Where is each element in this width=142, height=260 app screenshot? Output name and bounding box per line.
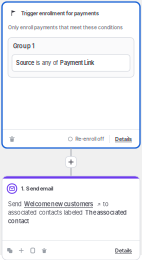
staticText: Details <box>115 247 132 254</box>
staticText: Send Welcome new customers ↗ to associat… <box>8 201 127 225</box>
button[interactable]: Add step <box>64 155 78 169</box>
staticText: Source is any of Payment Link <box>16 60 94 66</box>
staticText: Only enroll payments that meet these con… <box>8 24 123 31</box>
button[interactable]: Details <box>115 245 132 256</box>
button[interactable]: Add branch <box>17 247 25 254</box>
staticText: 1. Send email <box>21 185 53 192</box>
button[interactable]: Re-enroll off <box>68 134 104 144</box>
staticText: Group 1 <box>13 43 34 50</box>
staticText: Details <box>115 136 132 142</box>
button[interactable]: Copy <box>29 247 36 254</box>
button[interactable]: Details <box>115 134 132 144</box>
button[interactable]: Delete trigger <box>7 134 17 144</box>
button[interactable]: Delete action <box>40 247 48 254</box>
button[interactable]: Duplicate <box>6 247 13 254</box>
staticText: Re-enroll off <box>75 136 104 142</box>
staticText: Trigger enrollment for payments <box>21 10 99 16</box>
